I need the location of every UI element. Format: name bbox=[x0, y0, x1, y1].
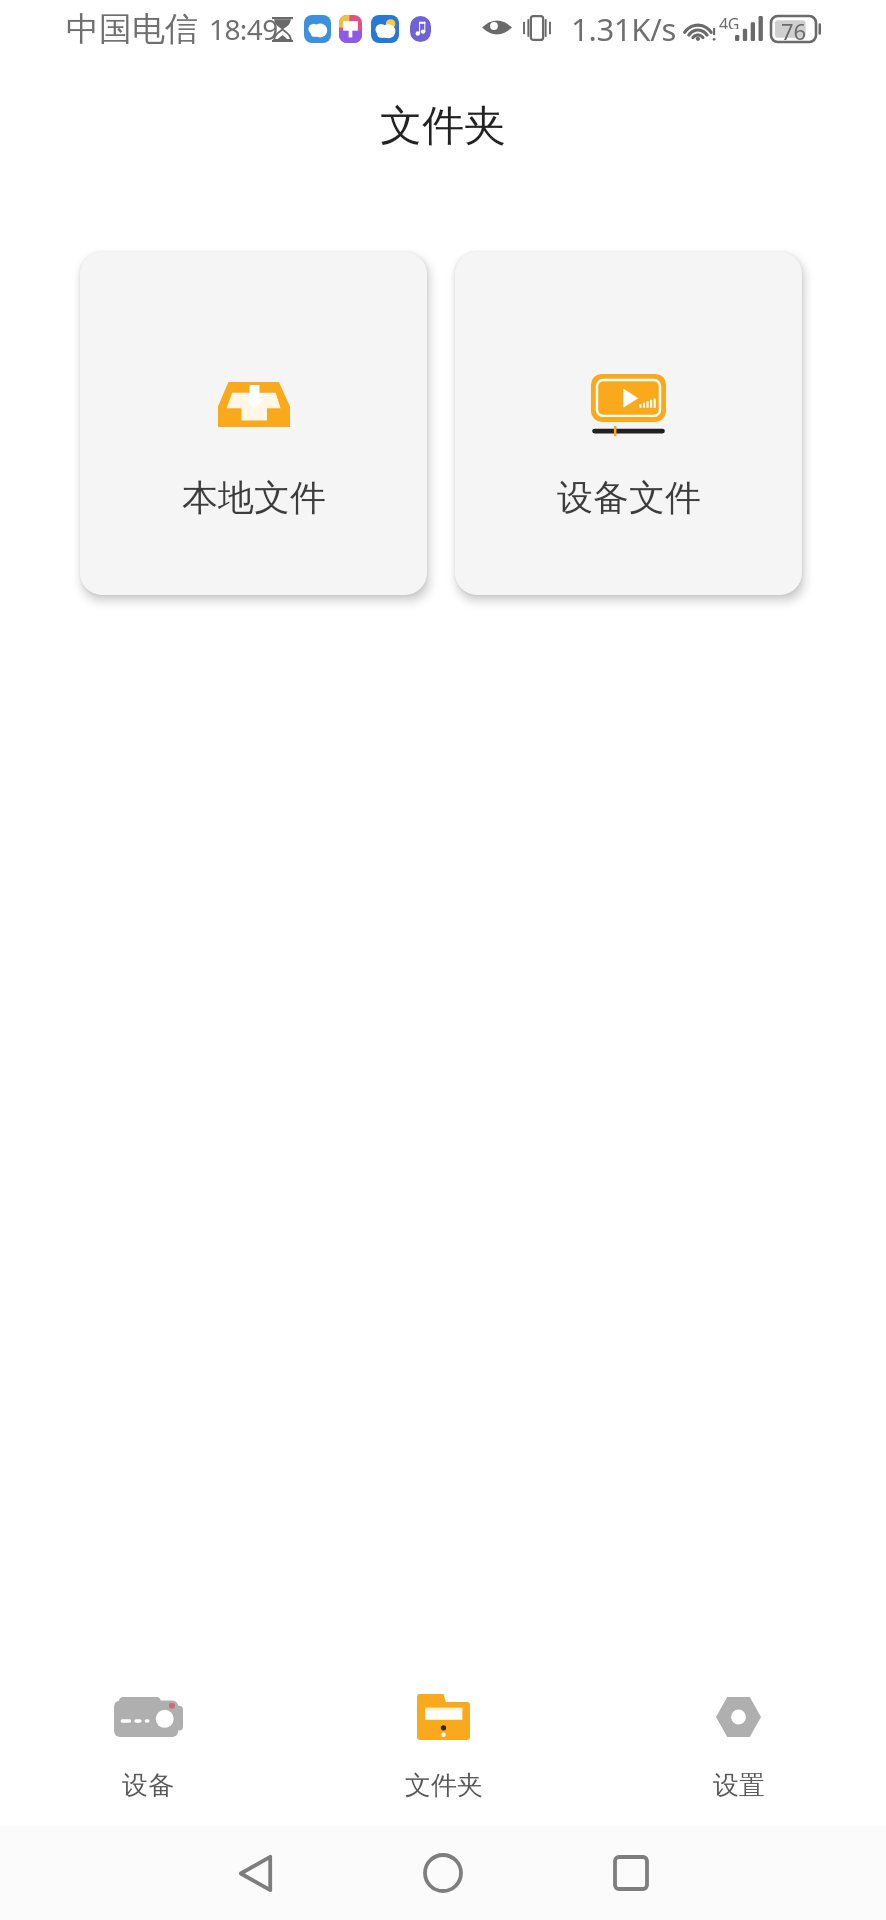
button[interactable]: 设备 bbox=[0, 1684, 296, 1826]
button[interactable]: 设置 bbox=[591, 1684, 886, 1826]
other: 设置 bbox=[716, 1697, 761, 1737]
staticText: 本地文件 bbox=[182, 475, 326, 520]
staticText: 76 bbox=[781, 16, 807, 42]
button[interactable]: 本地文件 bbox=[80, 252, 427, 595]
button[interactable]: Back bbox=[161, 1826, 349, 1920]
staticText: 4G bbox=[719, 13, 739, 29]
staticText: 中国电信 bbox=[66, 8, 198, 50]
staticText: 18:49 bbox=[209, 10, 278, 48]
button[interactable]: Home bbox=[349, 1826, 537, 1920]
staticText: 1.31K/s bbox=[571, 8, 676, 50]
button[interactable]: 文件夹 bbox=[296, 1684, 591, 1826]
button[interactable]: Recents bbox=[537, 1826, 725, 1920]
staticText: 设备 bbox=[122, 1769, 174, 1802]
other: 设备 bbox=[114, 1697, 183, 1737]
staticText: 文件夹 bbox=[405, 1769, 483, 1802]
staticText: 设备文件 bbox=[557, 475, 701, 520]
button[interactable]: 设备文件 bbox=[455, 252, 802, 595]
staticText: 设置 bbox=[713, 1769, 765, 1802]
other: 文件夹 bbox=[417, 1694, 470, 1740]
staticText: 文件夹 bbox=[380, 100, 506, 153]
